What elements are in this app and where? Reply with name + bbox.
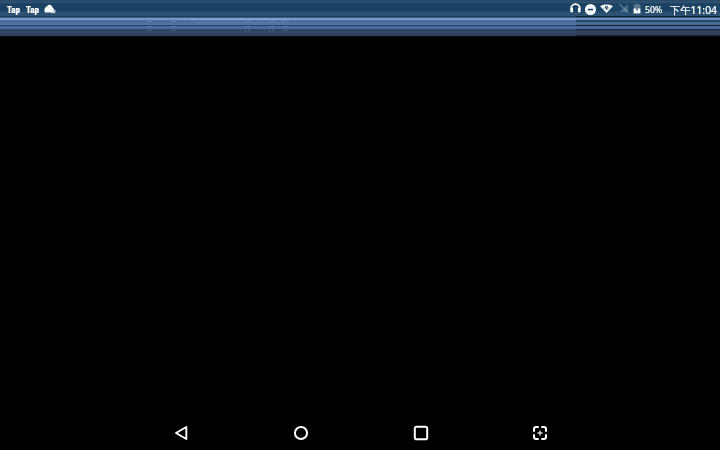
staticText: 下午11:04 xyxy=(670,3,717,17)
button[interactable]: Recent apps xyxy=(397,415,445,450)
staticText: Tap xyxy=(7,4,21,15)
button[interactable]: Screenshot xyxy=(516,415,564,450)
button[interactable]: Back xyxy=(157,415,205,450)
staticText: Tap xyxy=(26,4,40,15)
button[interactable]: Home xyxy=(277,415,325,450)
staticText: 50% xyxy=(645,4,663,16)
